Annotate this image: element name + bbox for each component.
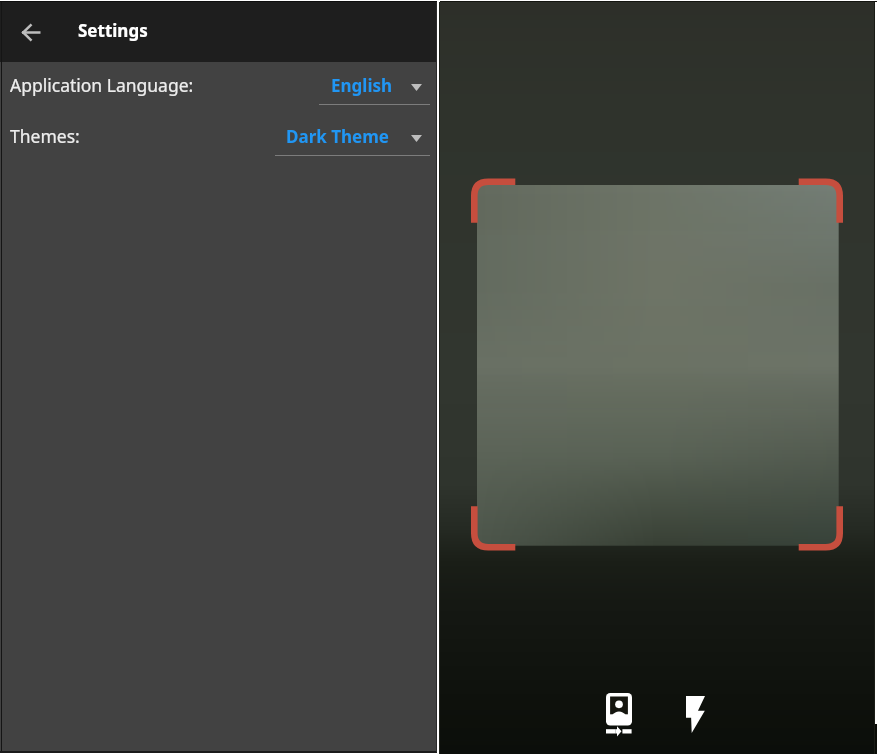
staticText: Themes:: [10, 124, 80, 148]
button[interactable]: Application Language:: [0, 62, 437, 112]
button[interactable]: Import image: [594, 690, 644, 740]
button[interactable]: Toggle flash: [670, 689, 720, 739]
staticText: Application Language:: [10, 73, 194, 97]
staticText: Dark Theme: [286, 125, 389, 148]
button[interactable]: Back: [9, 10, 53, 54]
staticText: Settings: [78, 19, 148, 42]
staticText: English: [331, 74, 393, 97]
button[interactable]: Themes:: [0, 112, 437, 162]
